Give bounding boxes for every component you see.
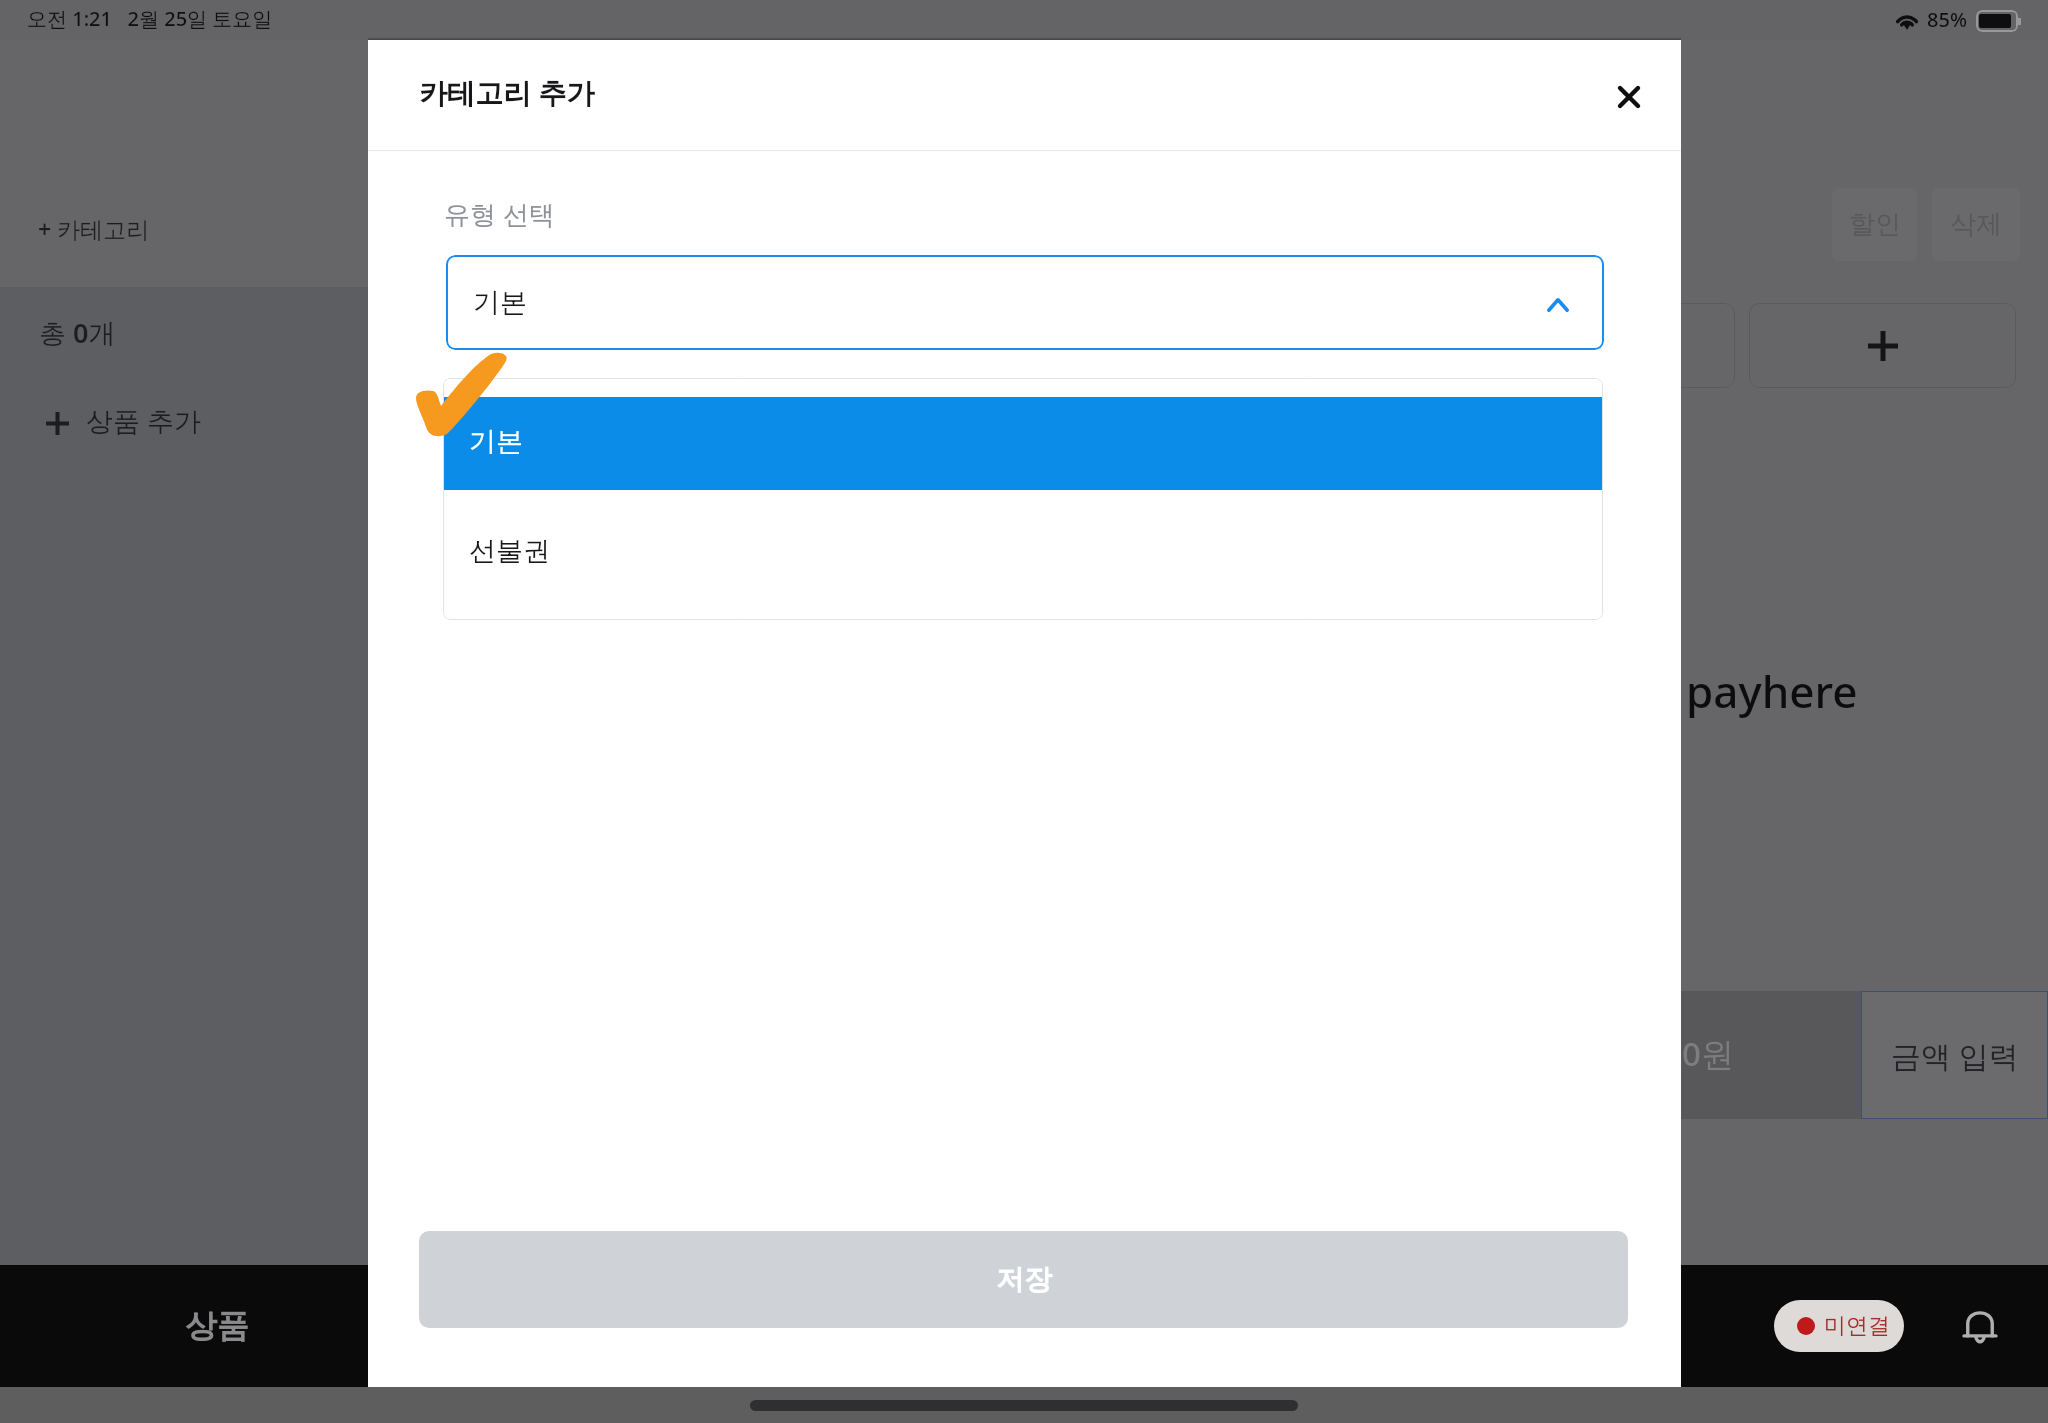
button[interactable]: + 카테고리 — [20, 190, 350, 268]
button[interactable]: Notifications — [1950, 1296, 2010, 1356]
button[interactable]: 선불권 — [443, 489, 1603, 599]
staticText: 카테고리 추가 — [419, 73, 595, 111]
staticText: 기본 — [473, 286, 527, 320]
staticText: 삭제 — [1950, 208, 2002, 241]
staticText: 오전 1:21 2월 25일 토요일 — [27, 5, 273, 32]
button[interactable]: 삭제 — [1932, 188, 2020, 261]
staticText: 금액 입력 — [1891, 1035, 2019, 1076]
staticText: 85% — [1927, 6, 1967, 33]
button[interactable]: 상품 추가 — [20, 380, 350, 454]
staticText: 미연결 — [1824, 1312, 1890, 1340]
button[interactable]: 미연결 — [1774, 1300, 1904, 1352]
staticText: 선불권 — [469, 534, 550, 568]
button[interactable]: 기본 — [446, 255, 1604, 350]
button[interactable]: 저장 — [419, 1231, 1628, 1328]
button[interactable]: 할인 — [1832, 188, 1917, 261]
button[interactable]: 상품 — [66, 1265, 368, 1387]
staticText: 상품 — [185, 1306, 249, 1346]
button[interactable]: Close — [1598, 66, 1660, 128]
staticText: 할인 — [1849, 208, 1901, 241]
staticText: 상품 추가 — [86, 402, 202, 439]
button[interactable]: 기본 — [443, 397, 1603, 490]
staticText: payhere — [1686, 661, 1858, 721]
staticText: 저장 — [996, 1262, 1052, 1297]
staticText: 유형 선택 — [444, 196, 555, 232]
staticText: + 카테고리 — [38, 213, 150, 244]
staticText: 기본 — [469, 425, 523, 459]
staticText: 0원 — [1682, 1031, 1734, 1076]
staticText: 총 0개 — [39, 314, 116, 351]
button[interactable]: 금액 입력 — [1861, 991, 2048, 1119]
button[interactable]: Add product — [1749, 303, 2016, 388]
